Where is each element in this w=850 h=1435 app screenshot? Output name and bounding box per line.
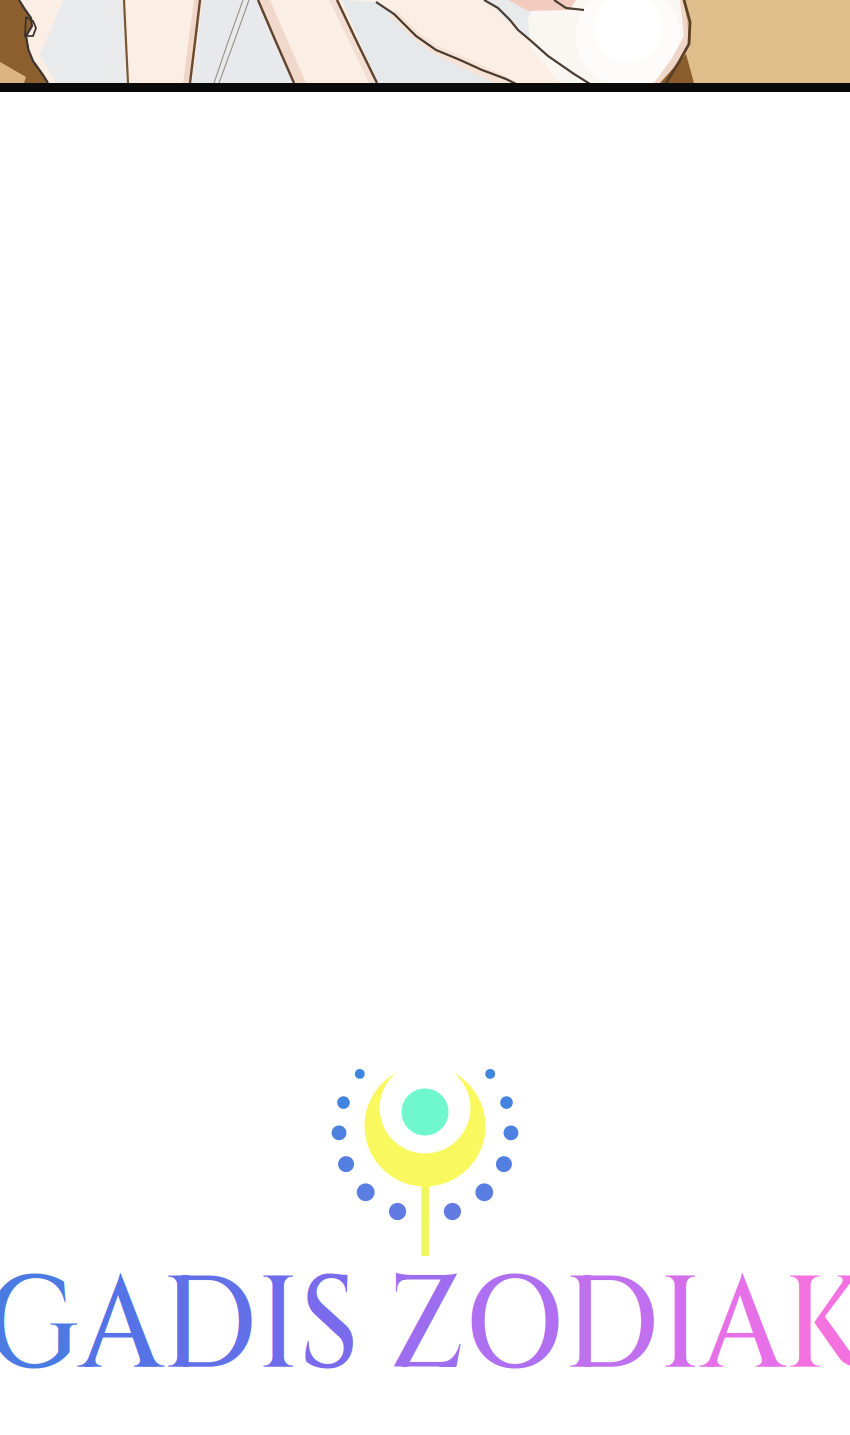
staticText: D	[129, 1239, 236, 1415]
staticText: Z	[383, 1239, 469, 1415]
staticText: G	[0, 1239, 36, 1415]
staticText	[350, 1239, 383, 1415]
staticText: S	[283, 1239, 350, 1415]
staticText: I	[236, 1239, 283, 1415]
staticText: A	[36, 1239, 129, 1415]
staticText: O	[469, 1239, 581, 1415]
staticText: I	[688, 1239, 735, 1415]
staticText: K	[828, 1239, 850, 1415]
staticText: A	[735, 1239, 828, 1415]
staticText: D	[581, 1239, 688, 1415]
